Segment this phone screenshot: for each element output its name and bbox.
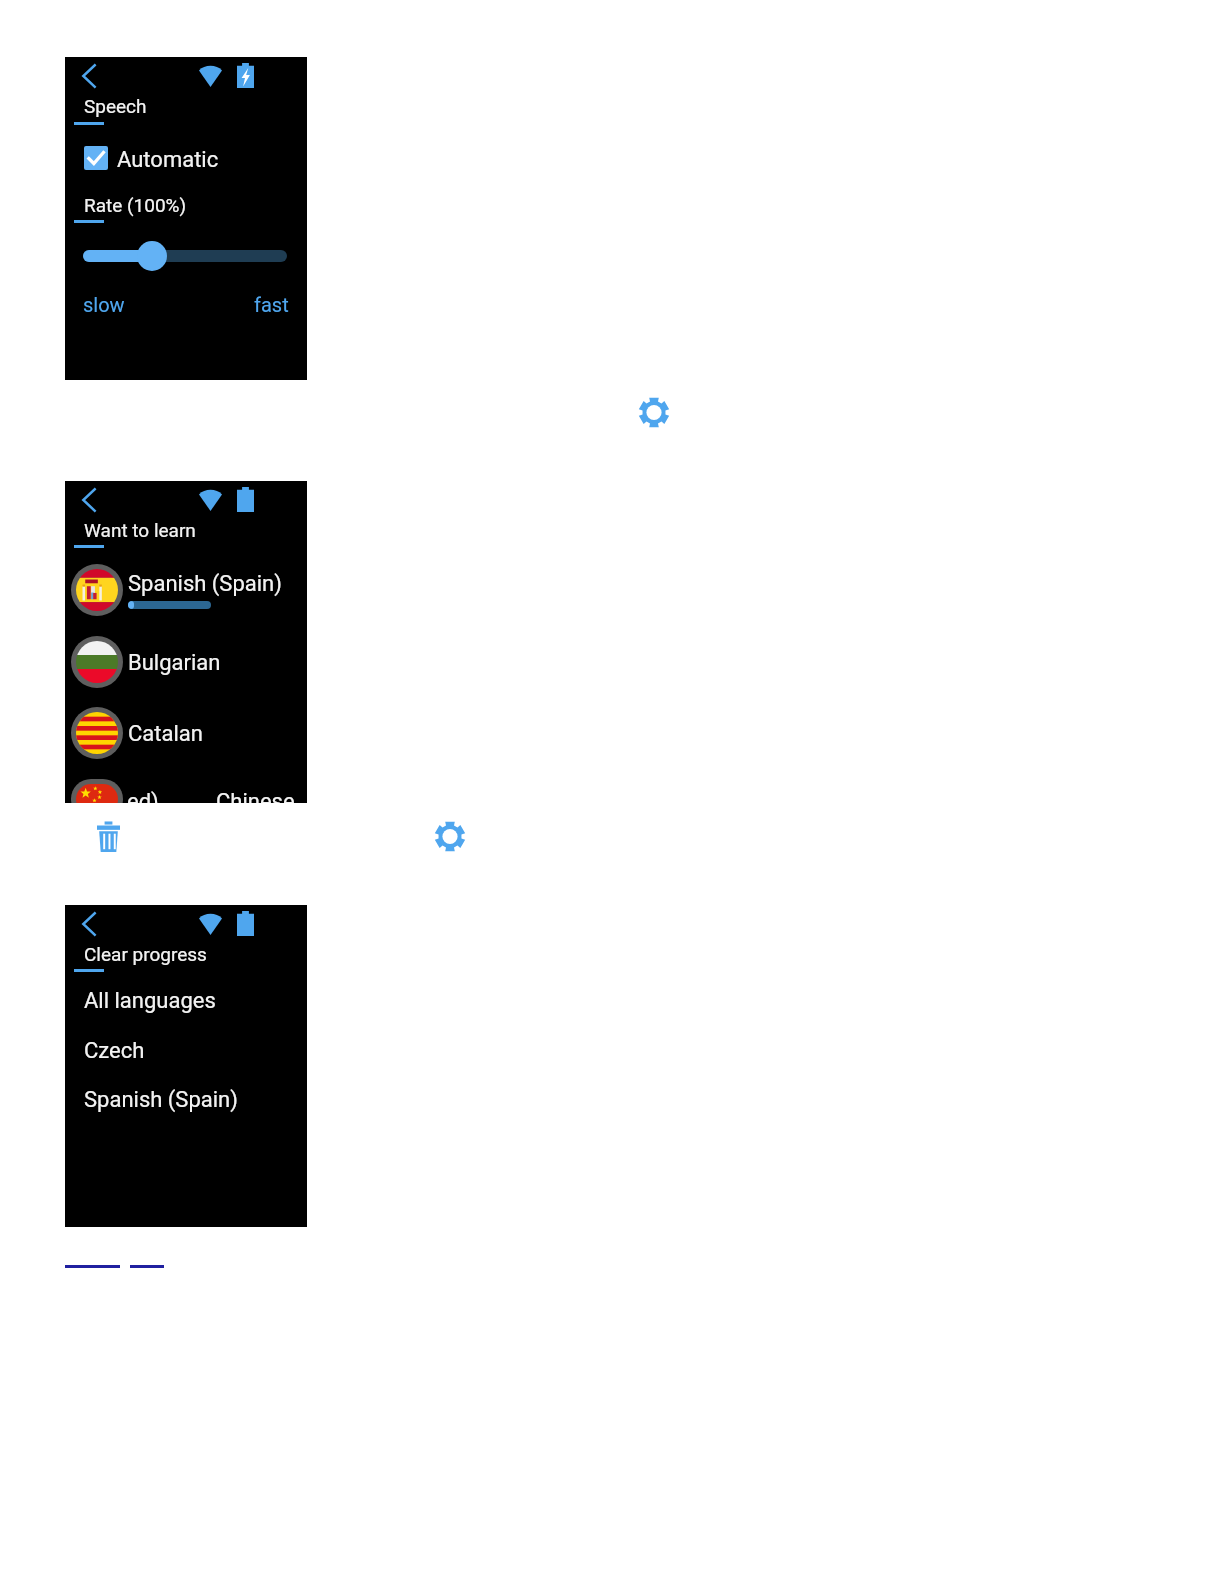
button[interactable]: Back (75, 482, 105, 520)
button[interactable]: Czech (65, 1031, 307, 1075)
button[interactable]: Delete (97, 821, 120, 852)
staticText: Czech (84, 1038, 145, 1064)
button[interactable]: Spanish (Spain) (65, 1080, 307, 1124)
staticText: Clear progress (84, 943, 207, 965)
staticText: Spanish (Spain) (128, 571, 282, 597)
button[interactable]: Catalan (65, 702, 307, 764)
staticText: Bulgarian (128, 650, 221, 676)
staticText: slow (83, 293, 125, 316)
button[interactable]: All languages (65, 981, 307, 1025)
button[interactable]: Back (75, 58, 105, 96)
button[interactable]: Automatic (79, 141, 291, 175)
staticText: Want to learn (84, 519, 196, 541)
button[interactable]: Settings (640, 397, 668, 428)
button[interactable]: Spanish (Spain) (65, 559, 307, 621)
staticText: Spanish (Spain) (84, 1087, 238, 1113)
staticText: Speech (84, 95, 147, 117)
staticText: fast (254, 293, 289, 316)
staticText: Chinese (216, 789, 295, 803)
button[interactable]: ed) (65, 775, 307, 803)
staticText: Automatic (117, 147, 219, 173)
staticText: ed) (127, 789, 159, 803)
button[interactable]: Back (75, 906, 105, 944)
staticText: Rate (100%) (84, 194, 187, 216)
staticText: All languages (84, 988, 216, 1014)
button[interactable]: Bulgarian (65, 631, 307, 693)
staticText: Catalan (128, 721, 203, 747)
button[interactable]: Settings (436, 821, 464, 852)
button[interactable] (137, 241, 167, 271)
